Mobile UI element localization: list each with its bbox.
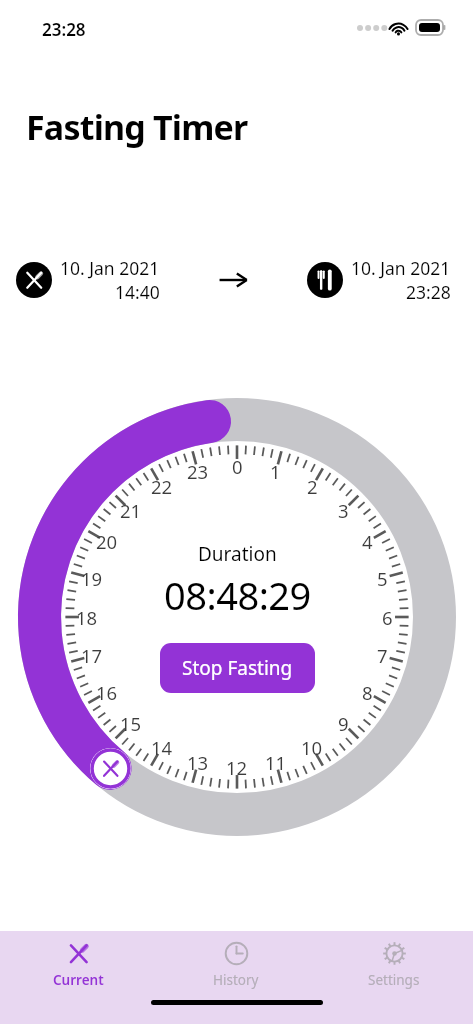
staticText: History — [213, 971, 259, 989]
staticText: Duration — [198, 541, 277, 567]
staticText: 22 — [151, 474, 173, 499]
staticText: 13 — [187, 750, 209, 775]
staticText: 20 — [96, 529, 118, 554]
other: Fast start — [16, 262, 52, 298]
staticText: 10. Jan 2021 — [351, 256, 451, 280]
staticText: 5 — [377, 566, 388, 591]
staticText: Settings — [368, 971, 420, 989]
staticText: 2 — [307, 474, 318, 499]
button[interactable]: Settings — [315, 931, 473, 993]
staticText: 18 — [76, 605, 98, 630]
staticText: 6 — [382, 605, 393, 630]
staticText: Current — [53, 971, 104, 989]
staticText: 19 — [81, 566, 103, 591]
staticText: 14 — [151, 735, 173, 760]
button[interactable]: Current — [0, 931, 157, 993]
staticText: 21 — [120, 498, 142, 523]
button[interactable]: Fast start marker — [90, 748, 131, 789]
staticText: 10 — [301, 735, 323, 760]
other: History — [223, 940, 250, 967]
staticText: Stop Fasting — [182, 655, 293, 681]
staticText: 14:40 — [115, 280, 160, 304]
staticText: 10. Jan 2021 — [60, 256, 160, 280]
staticText: 23:28 — [406, 280, 451, 304]
staticText: 17 — [81, 643, 103, 668]
staticText: 11 — [265, 750, 287, 775]
staticText: 1 — [270, 459, 281, 484]
staticText: 16 — [96, 680, 118, 705]
staticText: 23:28 — [42, 18, 86, 41]
other: Fast end — [307, 262, 343, 298]
other: Current — [65, 940, 92, 967]
button[interactable]: History — [157, 931, 315, 993]
staticText: 08:48:29 — [164, 569, 311, 621]
staticText: Fasting Timer — [26, 104, 248, 150]
staticText: 9 — [338, 711, 349, 736]
staticText: 0 — [232, 454, 243, 479]
staticText: 23 — [187, 459, 209, 484]
staticText: 7 — [377, 643, 388, 668]
other: Settings — [381, 940, 408, 967]
staticText: 8 — [362, 680, 373, 705]
staticText: 12 — [226, 755, 248, 780]
staticText: 4 — [362, 529, 373, 554]
staticText: 15 — [120, 711, 142, 736]
button[interactable]: Stop Fasting — [160, 643, 315, 693]
staticText: 3 — [338, 498, 349, 523]
